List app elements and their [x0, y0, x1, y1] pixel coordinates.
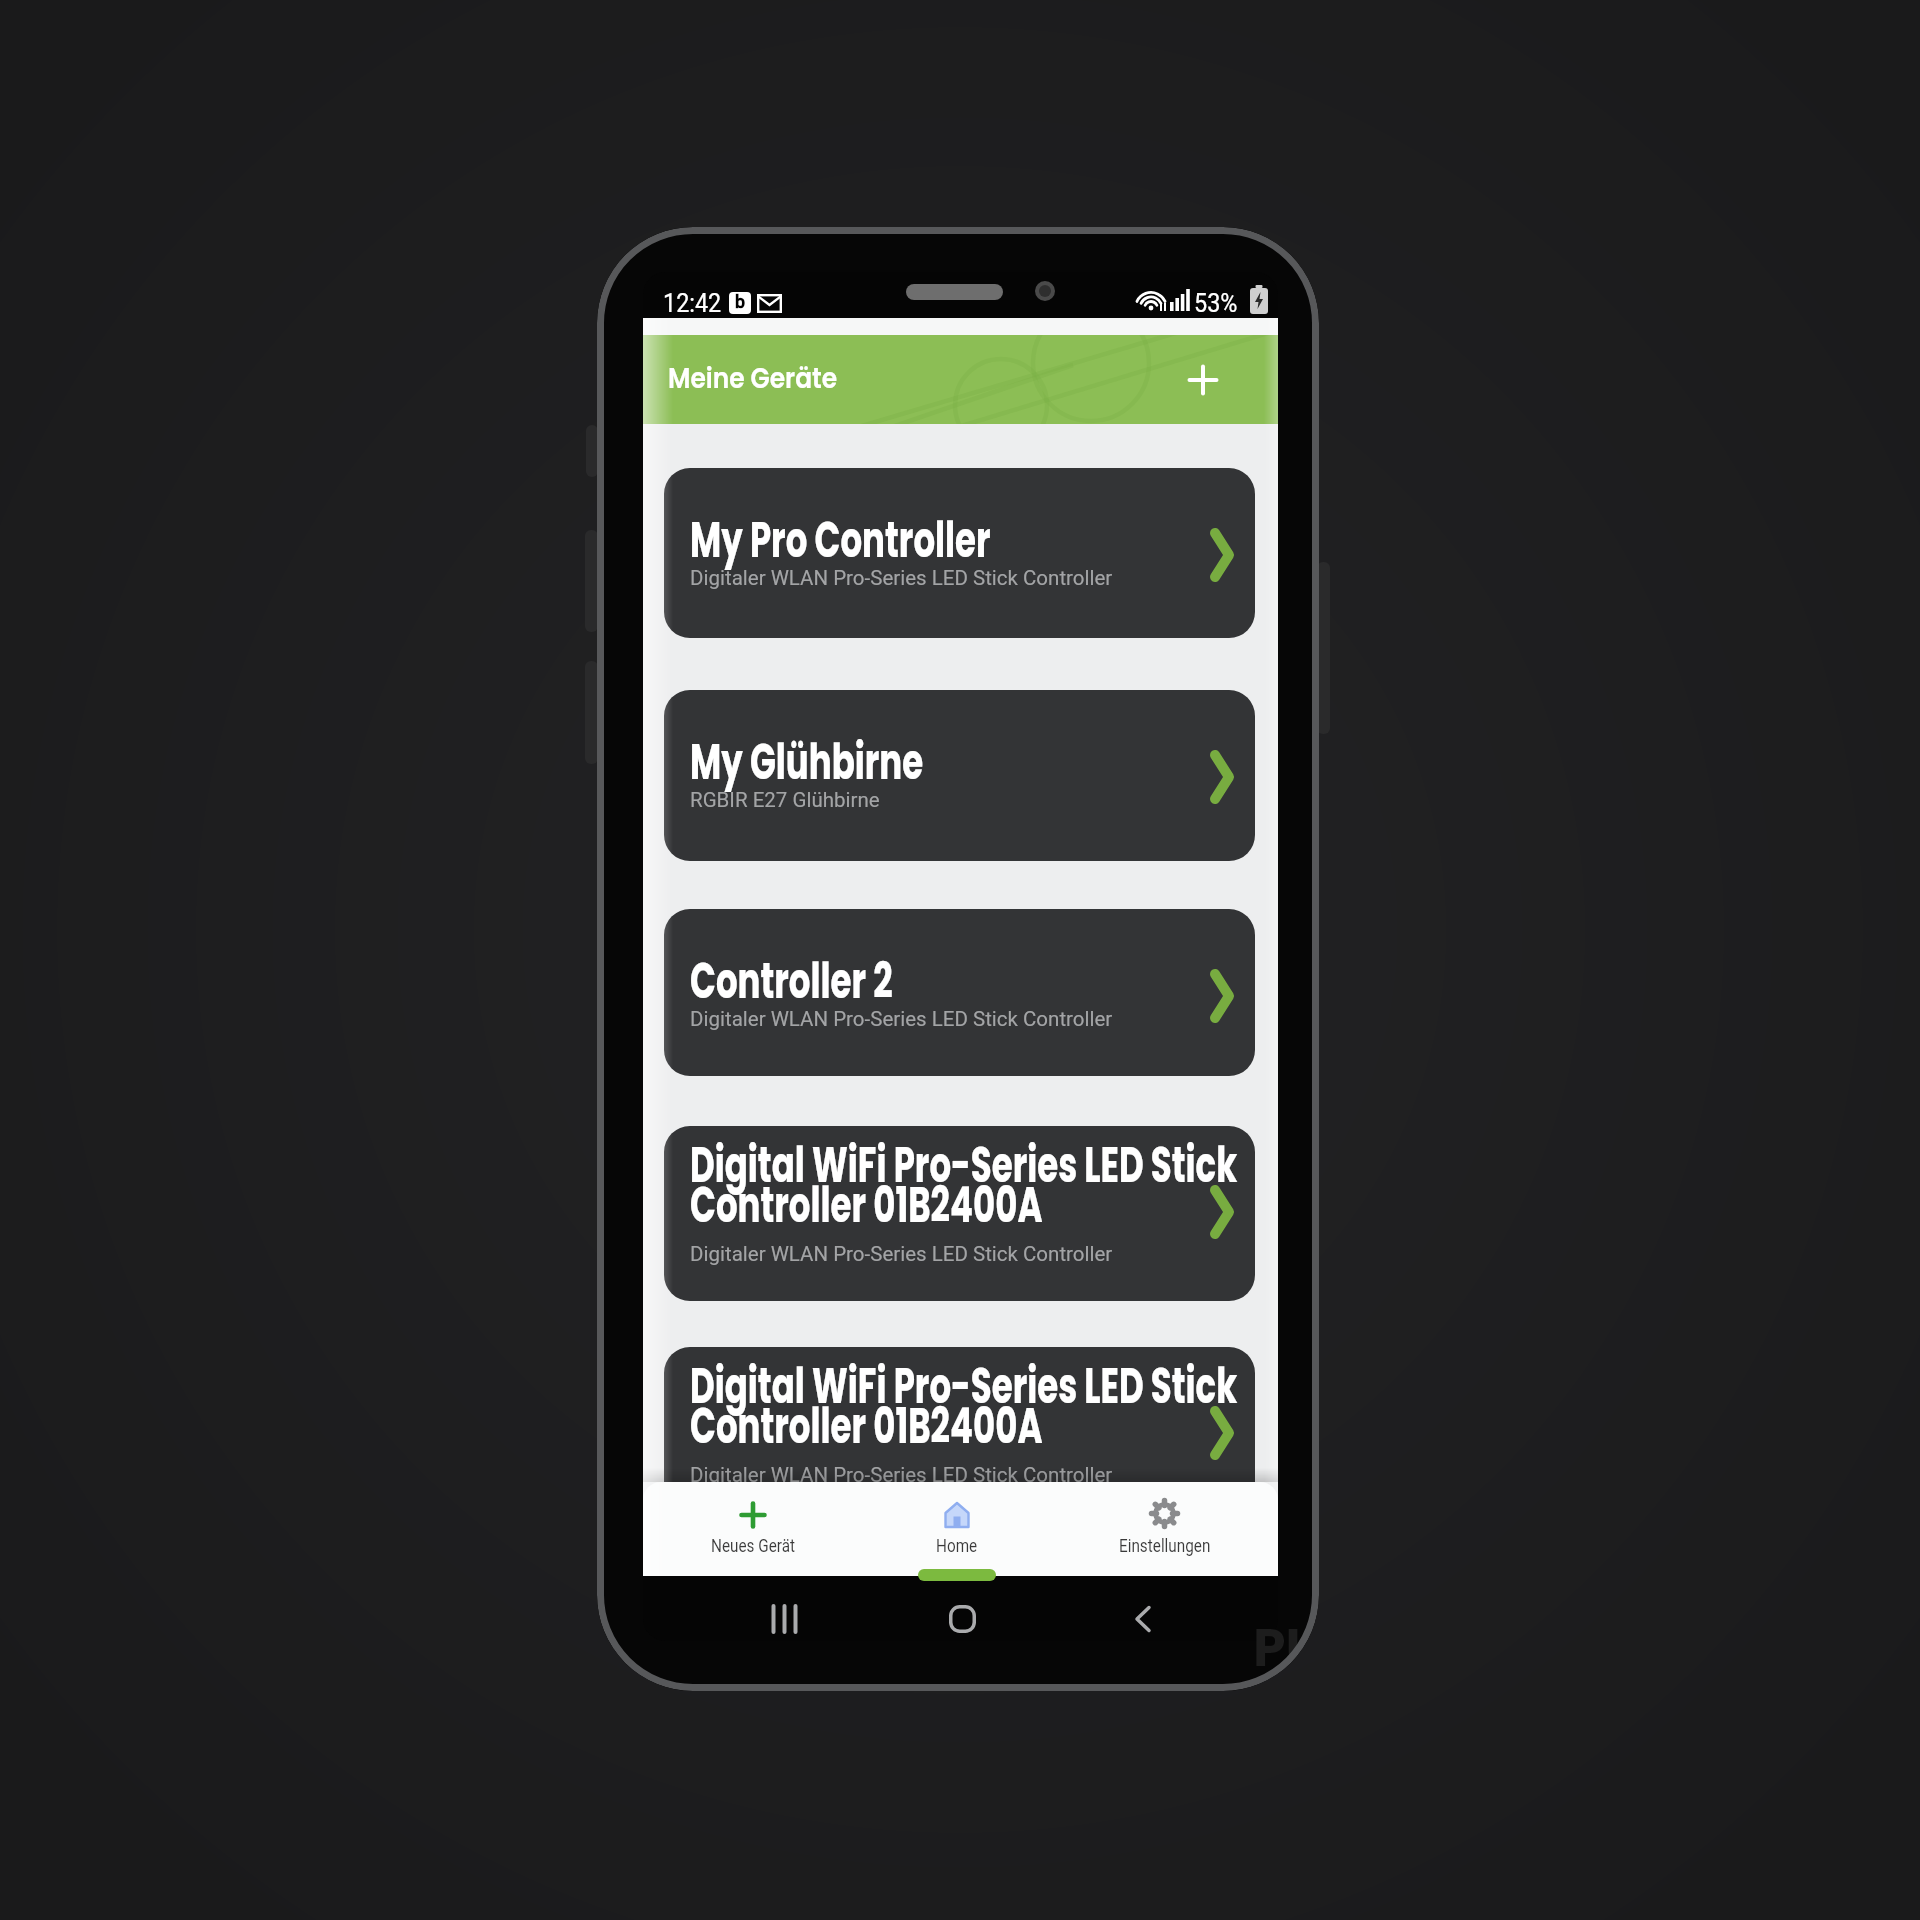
- button[interactable]: [756, 1594, 816, 1641]
- staticText: Digital WiFi Pro-Series LED Stick Contro…: [690, 1351, 1237, 1461]
- staticText: Digitaler WLAN Pro-Series LED Stick Cont…: [690, 1007, 1113, 1031]
- staticText: Neues Gerät: [711, 1535, 795, 1556]
- staticText: Home: [936, 1535, 978, 1556]
- button[interactable]: [1114, 1594, 1174, 1641]
- staticText: Digitaler WLAN Pro-Series LED Stick Cont…: [690, 1242, 1113, 1266]
- staticText: b: [735, 292, 746, 312]
- button[interactable]: [1176, 353, 1230, 407]
- staticText: Meine Geräte: [668, 358, 838, 398]
- staticText: Digitaler WLAN Pro-Series LED Stick Cont…: [690, 566, 1113, 590]
- staticText: PU: [1253, 1611, 1319, 1684]
- staticText: Controller 2: [690, 946, 893, 1016]
- staticText: 53%: [1194, 288, 1238, 318]
- staticText: My Pro Controller: [690, 505, 991, 575]
- staticText: 12:42: [663, 288, 721, 318]
- button[interactable]: Digital WiFi Pro-Series LED Stick Contro…: [664, 1347, 1255, 1522]
- button[interactable]: Home: [877, 1484, 1037, 1570]
- staticText: Digital WiFi Pro-Series LED Stick Contro…: [690, 1130, 1237, 1240]
- button[interactable]: Digital WiFi Pro-Series LED Stick Contro…: [664, 1126, 1255, 1301]
- button[interactable]: My Pro Controller: [664, 468, 1255, 638]
- button[interactable]: Controller 2: [664, 909, 1255, 1076]
- staticText: My Glühbirne: [690, 727, 923, 797]
- button[interactable]: [933, 1594, 993, 1641]
- staticText: RGBIR E27 Glühbirne: [690, 788, 880, 812]
- button[interactable]: Einstellungen: [1083, 1484, 1247, 1570]
- staticText: Einstellungen: [1119, 1535, 1211, 1556]
- button[interactable]: My Glühbirne: [664, 690, 1255, 861]
- button[interactable]: Neues Gerät: [673, 1484, 833, 1570]
- staticText: Digitaler WLAN Pro-Series LED Stick Cont…: [690, 1463, 1113, 1487]
